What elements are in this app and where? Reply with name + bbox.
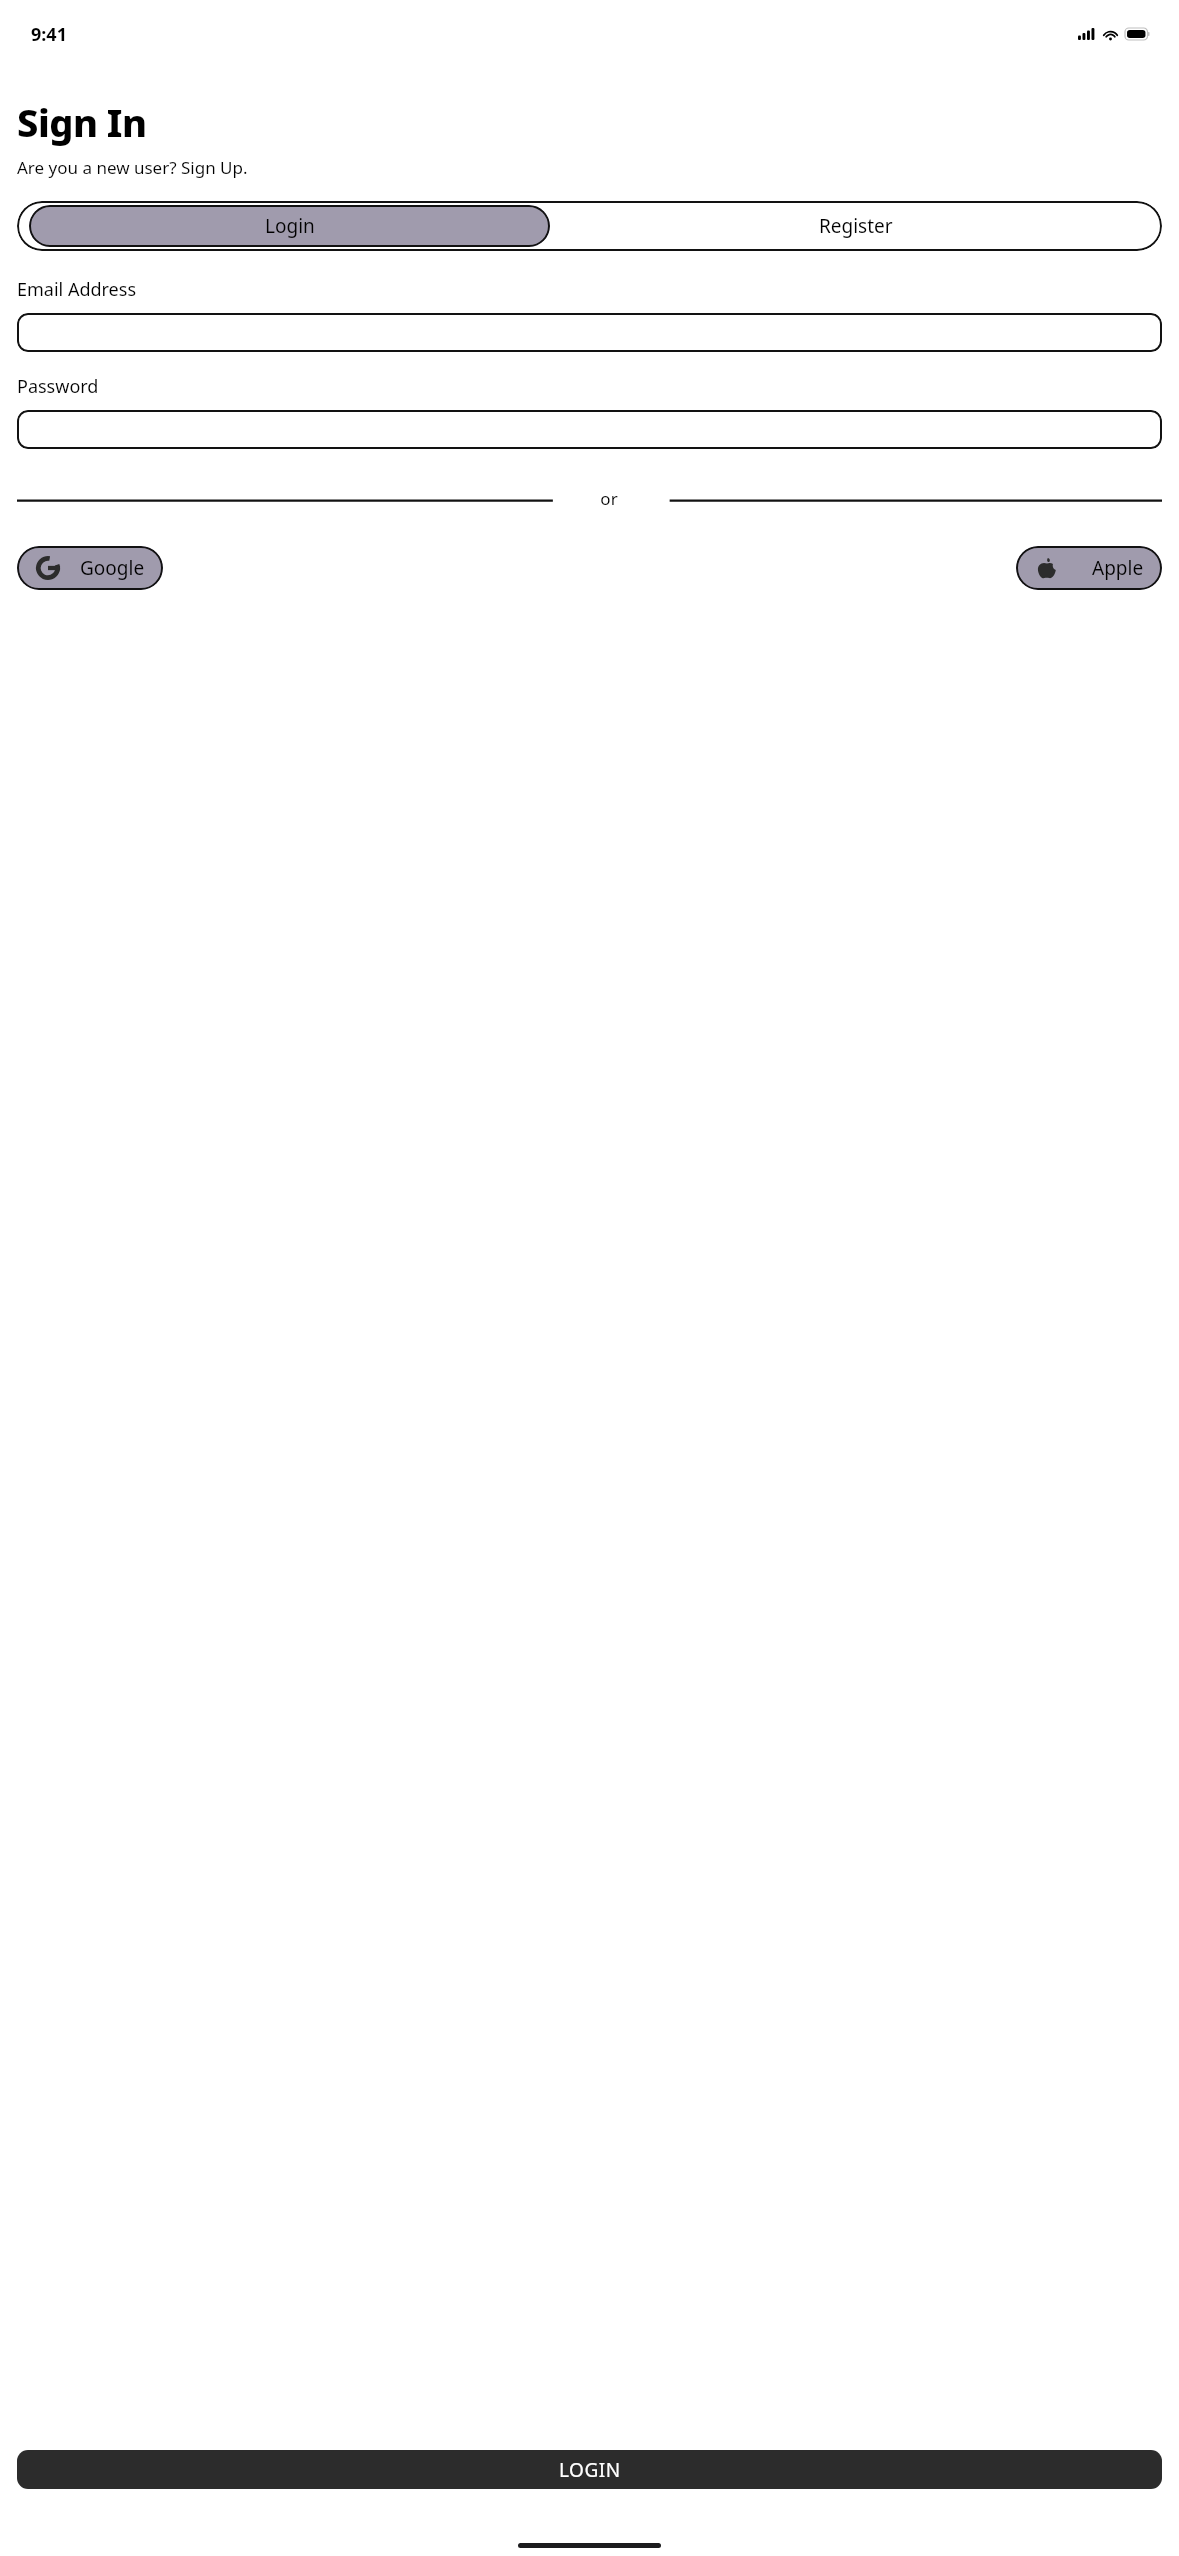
button[interactable]: LOGIN [17,2450,1162,2489]
staticText: Sign In [17,96,147,148]
button[interactable] [17,410,1162,449]
staticText: 9:41 [31,22,67,47]
staticText: LOGIN [559,2457,621,2483]
button[interactable]: Are you a new user? Sign Up. [17,156,248,179]
button[interactable] [17,313,1162,352]
other: Apple [1036,557,1058,579]
other: Google [37,557,59,579]
staticText: Google [80,555,145,581]
staticText: Register [819,213,893,239]
button[interactable]: Apple [1016,546,1162,590]
staticText: Password [17,374,99,399]
staticText: or [600,487,618,509]
button[interactable]: Login [29,205,550,247]
button[interactable]: Register [550,201,1162,251]
staticText: Apple [1092,555,1144,581]
button[interactable]: Google [17,546,163,590]
staticText: Email Address [17,277,137,302]
staticText: Login [265,213,315,239]
